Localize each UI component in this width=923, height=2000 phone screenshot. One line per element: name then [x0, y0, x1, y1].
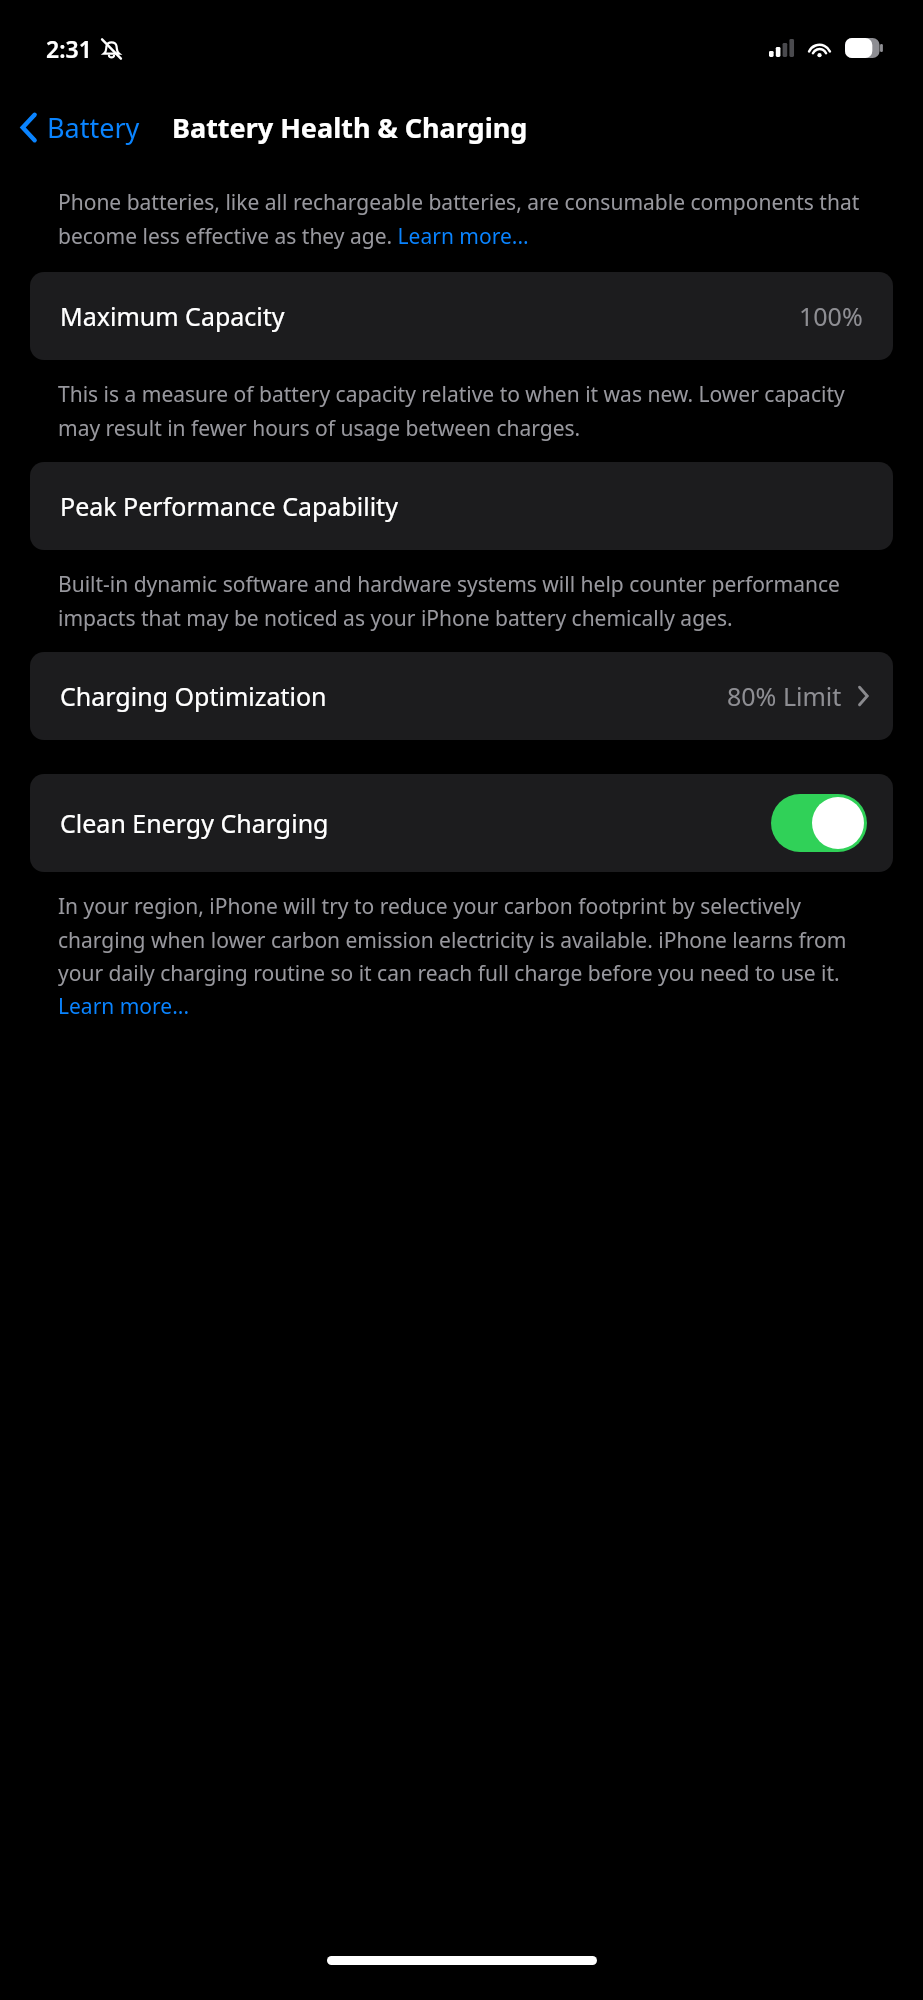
staticText: 2:31 — [46, 33, 92, 64]
staticText: Maximum Capacity — [60, 299, 285, 333]
staticText: 80% Limit — [727, 679, 842, 713]
staticText: Built-in dynamic software and hardware s… — [58, 570, 873, 632]
staticText: This is a measure of battery capacity re… — [58, 380, 873, 442]
button[interactable]: Peak Performance Capability — [30, 462, 893, 550]
staticText: 100% — [799, 299, 863, 333]
staticText: Phone batteries, like all rechargeable b… — [58, 188, 873, 250]
staticText: Clean Energy Charging — [60, 806, 329, 840]
button[interactable]: Charging Optimization — [30, 652, 893, 740]
staticText: Peak Performance Capability — [60, 489, 398, 523]
staticText: Battery Health & Charging — [172, 109, 528, 146]
button[interactable]: Clean Energy Charging toggle — [771, 794, 867, 852]
staticText: Battery — [47, 109, 140, 146]
button[interactable]: Battery — [14, 103, 146, 152]
staticText: In your region, iPhone will try to reduc… — [58, 892, 875, 1020]
button[interactable]: Maximum Capacity — [30, 272, 893, 360]
staticText: Charging Optimization — [60, 679, 327, 713]
